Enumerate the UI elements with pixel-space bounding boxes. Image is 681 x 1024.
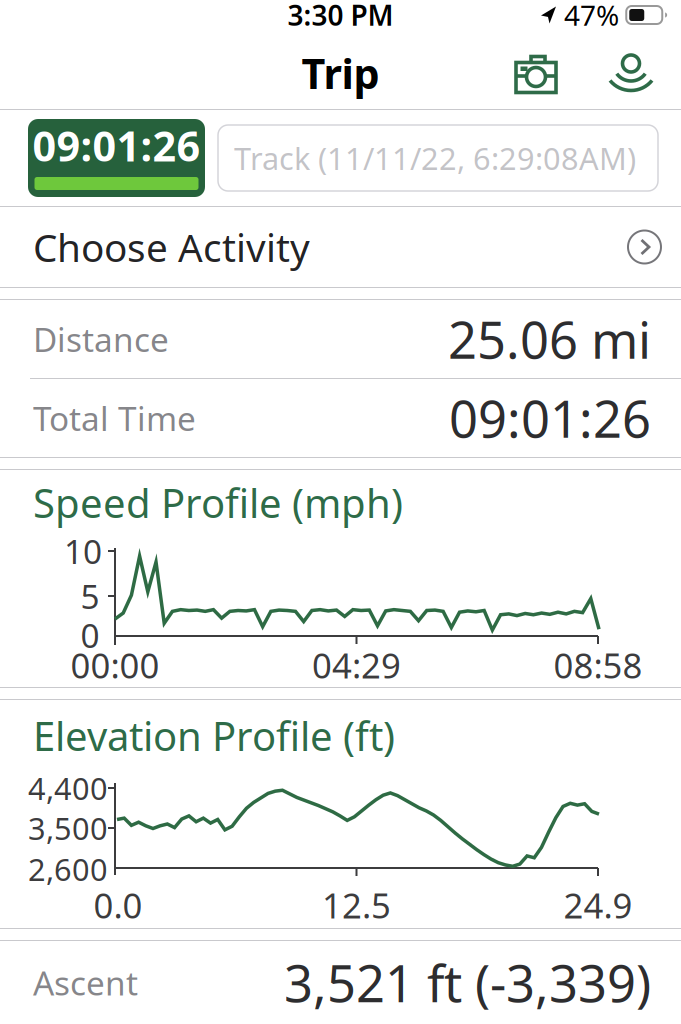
staticText: 3,521 ft (-3,339)	[284, 949, 651, 1016]
staticText: Elevation Profile (ft)	[33, 709, 395, 762]
staticText: 3,500	[28, 808, 108, 848]
staticText: 04:29	[312, 642, 401, 688]
staticText: Track (11/11/22, 6:29:08AM)	[234, 138, 636, 178]
staticText: Speed Profile (mph)	[33, 476, 403, 529]
staticText: 10	[64, 529, 102, 573]
staticText: Trip	[301, 46, 379, 100]
staticText: 0.0	[93, 882, 142, 928]
staticText: 4,400	[28, 768, 108, 808]
staticText: 24.9	[563, 882, 632, 928]
staticText: 09:01:26	[449, 384, 651, 452]
button[interactable]: 09:01:26	[28, 119, 205, 197]
staticText: 08:58	[553, 642, 642, 688]
staticText: Choose Activity	[33, 221, 310, 273]
staticText: 3:30 PM	[287, 0, 393, 34]
staticText: 00:00	[70, 642, 159, 688]
staticText: 5	[80, 574, 99, 618]
staticText: 12.5	[322, 882, 391, 928]
staticText: 25.06 mi	[448, 305, 651, 373]
staticText: 0	[80, 613, 99, 657]
staticText: Total Time	[33, 396, 196, 440]
staticText: Distance	[33, 317, 169, 361]
button[interactable]: Choose Activity	[0, 207, 681, 287]
staticText: 2,600	[28, 849, 108, 889]
staticText: 09:01:26	[32, 118, 200, 173]
button[interactable]: Take Photo	[514, 52, 560, 96]
button[interactable]: Track (11/11/22, 6:29:08AM)	[218, 125, 658, 191]
staticText: Ascent	[33, 960, 138, 1005]
button[interactable]: Add Waypoint	[610, 50, 652, 98]
staticText: 47%	[564, 0, 619, 34]
